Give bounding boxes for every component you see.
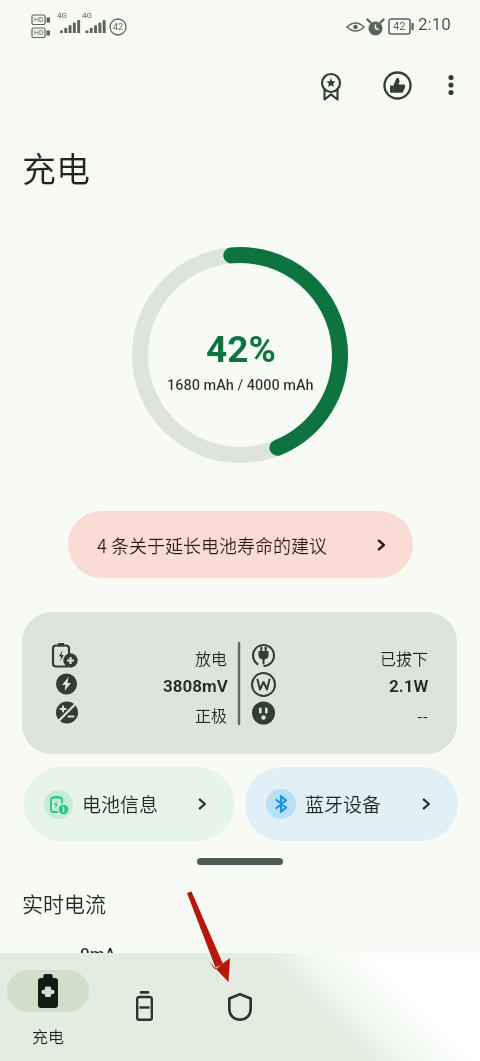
button[interactable]: Battery health xyxy=(112,974,176,1038)
staticText: 充电 xyxy=(22,143,90,192)
button[interactable]: 4 条关于延长电池寿命的建议 xyxy=(68,511,413,578)
staticText: 1680 mAh / 4000 mAh xyxy=(167,377,314,394)
staticText: 蓝牙设备 xyxy=(305,790,382,818)
button[interactable] xyxy=(7,970,89,1012)
button[interactable]: Protection xyxy=(208,975,272,1039)
staticText: 4G xyxy=(57,11,67,20)
button[interactable]: More options xyxy=(430,64,472,106)
staticText: 电池信息 xyxy=(82,790,159,818)
staticText: 充电 xyxy=(32,1024,65,1047)
staticText: 3808mV xyxy=(163,676,228,696)
staticText: 42 xyxy=(393,20,406,33)
button[interactable]: Like xyxy=(375,63,419,107)
staticText: 4G xyxy=(82,11,92,20)
staticText: HD xyxy=(34,29,44,37)
staticText: 已拔下 xyxy=(380,646,429,669)
staticText: 2:10 xyxy=(418,14,451,34)
button[interactable]: 蓝牙设备 xyxy=(245,767,458,841)
staticText: 2.1W xyxy=(389,676,429,696)
staticText: 放电 xyxy=(195,646,228,669)
button[interactable]: 电池信息 xyxy=(24,767,234,841)
button[interactable]: 充电 xyxy=(7,970,89,1047)
staticText: 42 xyxy=(113,22,124,33)
staticText: 42% xyxy=(206,328,276,371)
staticText: 0mA xyxy=(80,944,116,964)
staticText: 正极 xyxy=(195,703,228,726)
staticText: 实时电流 xyxy=(22,888,106,918)
staticText: HD xyxy=(34,16,44,24)
button[interactable]: Rewards xyxy=(309,64,353,108)
staticText: -- xyxy=(417,703,429,726)
staticText: 4 条关于延长电池寿命的建议 xyxy=(97,532,328,558)
